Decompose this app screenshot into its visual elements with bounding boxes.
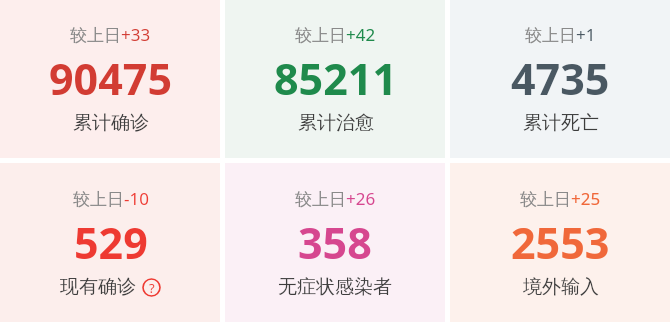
staticText: 较上日+1 (525, 23, 596, 46)
staticText: 较上日-10 (73, 187, 149, 210)
staticText: 较上日+42 (295, 23, 376, 46)
staticText: 较上日+33 (70, 23, 151, 46)
staticText: 无症状感染者 (278, 275, 392, 299)
staticText: 90475 (49, 49, 172, 108)
button[interactable]: 较上日+33 (0, 0, 220, 158)
staticText: 358 (298, 213, 372, 272)
staticText: 累计治愈 (298, 111, 374, 135)
button[interactable]: 较上日+26 (225, 163, 445, 322)
staticText: 较上日+25 (520, 187, 601, 210)
staticText: 境外输入 (523, 275, 599, 299)
staticText: ? (149, 279, 155, 297)
staticText: 较上日+26 (295, 187, 376, 210)
staticText: 累计确诊 (73, 111, 149, 135)
staticText: 4735 (511, 49, 610, 108)
staticText: 累计死亡 (523, 111, 599, 135)
button[interactable]: 现有确诊说明 (142, 278, 161, 297)
staticText: 2553 (511, 213, 610, 272)
staticText: 现有确诊 (60, 275, 136, 299)
button[interactable]: 较上日+1 (450, 0, 670, 158)
button[interactable]: 较上日+42 (225, 0, 445, 158)
button[interactable]: 较上日+25 (450, 163, 670, 322)
button[interactable]: 较上日-10 (0, 163, 220, 322)
staticText: 85211 (274, 49, 397, 108)
staticText: 529 (74, 213, 148, 272)
